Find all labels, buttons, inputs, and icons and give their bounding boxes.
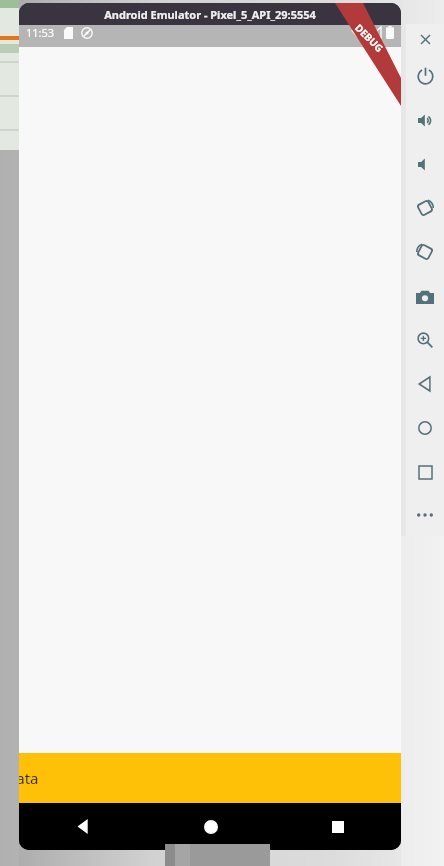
button[interactable]: Back	[19, 803, 147, 850]
button[interactable]: Back	[406, 362, 444, 406]
button[interactable]: Home	[147, 803, 274, 850]
staticText: Android Emulator - Pixel_5_API_29:5554	[104, 7, 316, 22]
button[interactable]: data	[19, 753, 401, 803]
staticText: DEBUG	[352, 21, 387, 55]
button[interactable]: Power	[406, 54, 444, 98]
button[interactable]: Close	[406, 24, 444, 54]
button[interactable]: Overview	[406, 450, 444, 494]
button[interactable]: Volume up	[406, 98, 444, 142]
button[interactable]: Rotate right	[406, 230, 444, 274]
button[interactable]: Take screenshot	[406, 274, 444, 318]
button[interactable]: Recent apps	[274, 803, 401, 850]
button[interactable]: More	[406, 494, 444, 536]
staticText: 11:53	[26, 25, 55, 40]
button[interactable]: Home	[406, 406, 444, 450]
button[interactable]: Rotate left	[406, 186, 444, 230]
button[interactable]: Volume down	[406, 142, 444, 186]
button[interactable]: Zoom	[406, 318, 444, 362]
staticText: data	[19, 768, 39, 788]
